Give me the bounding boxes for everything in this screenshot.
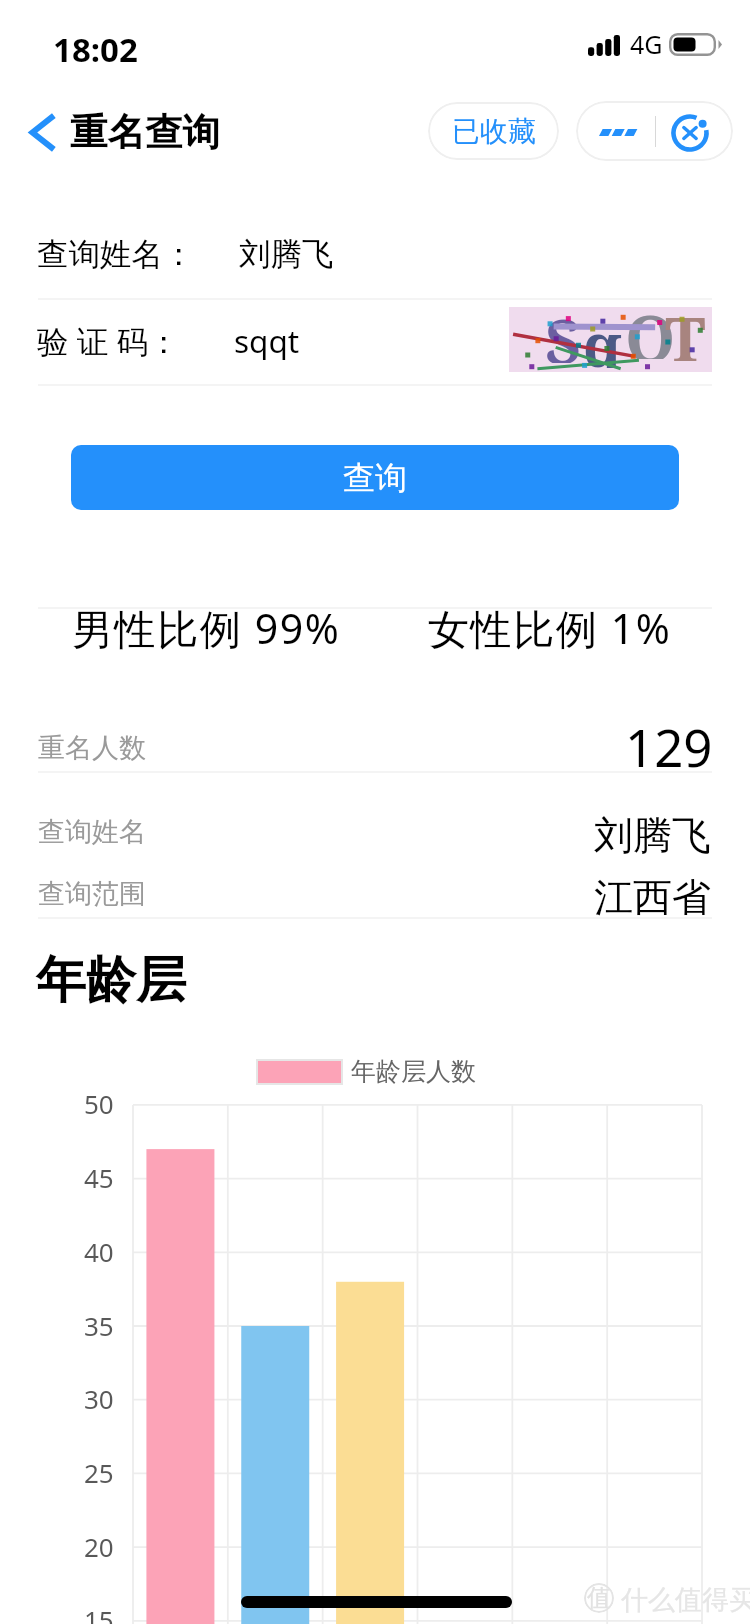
staticText: 129: [625, 712, 713, 772]
staticText: 45: [84, 1160, 114, 1194]
staticText: 50: [84, 1086, 114, 1120]
staticText: 25: [84, 1455, 114, 1489]
staticText: 查询: [343, 458, 407, 498]
staticText: 重名人数: [38, 731, 146, 765]
staticText: 年龄层: [36, 949, 186, 1012]
staticText: Q: [625, 294, 676, 359]
staticText: q: [583, 303, 622, 368]
staticText: 15: [84, 1602, 114, 1624]
staticText: 35: [84, 1308, 114, 1342]
staticText: 查询范围: [38, 877, 146, 911]
staticText: 18:02: [53, 27, 138, 72]
staticText: sqqt: [234, 319, 300, 362]
staticText: 刘腾飞: [239, 235, 334, 275]
staticText: 已收藏: [452, 114, 536, 149]
staticText: 查询姓名：: [37, 235, 195, 275]
staticText: S: [545, 298, 581, 363]
staticText: 女性比例 1%: [428, 600, 672, 656]
button[interactable]: Back: [18, 102, 230, 163]
staticText: 江西省: [594, 873, 711, 922]
staticText: 刘腾飞: [594, 811, 711, 860]
staticText: 年龄层人数: [351, 1056, 476, 1087]
staticText: 20: [84, 1529, 114, 1563]
staticText: 验 证 码：: [37, 319, 180, 362]
button[interactable]: 查询: [71, 445, 679, 510]
button[interactable]: Refresh captcha: [509, 307, 712, 372]
button[interactable]: More options: [576, 101, 655, 161]
staticText: 值: [587, 1583, 611, 1613]
button[interactable]: Close mini program: [655, 101, 733, 161]
staticText: 30: [84, 1381, 114, 1415]
staticText: 男性比例 99%: [72, 600, 341, 656]
staticText: 什么值得买: [621, 1583, 750, 1617]
staticText: 查询姓名: [38, 815, 146, 849]
staticText: 重名查询: [70, 109, 220, 156]
staticText: T: [665, 296, 706, 361]
button[interactable]: 已收藏: [428, 102, 559, 160]
staticText: 4G: [630, 27, 663, 61]
staticText: 40: [84, 1234, 114, 1268]
